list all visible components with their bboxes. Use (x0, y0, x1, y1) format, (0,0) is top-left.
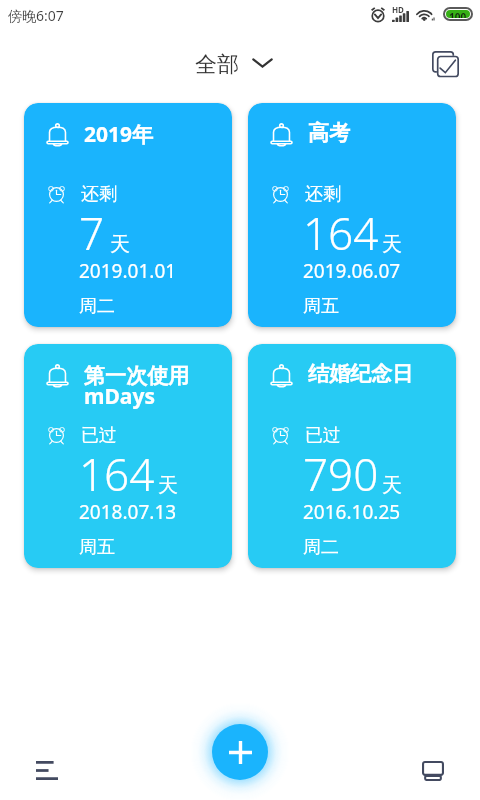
staticText: 天 (110, 232, 130, 257)
staticText: 高考 (308, 120, 350, 146)
staticText: 结婚纪念日 (308, 361, 413, 387)
button[interactable]: Multi select (423, 42, 467, 86)
staticText: 全部 (195, 51, 239, 79)
staticText: 周五 (79, 536, 115, 559)
staticText: mDays (84, 382, 155, 411)
staticText: 100 (449, 10, 467, 18)
staticText: 2019.06.07 (303, 258, 401, 284)
staticText: 2019年 (84, 120, 154, 149)
staticText: 已过 (81, 424, 117, 447)
staticText: 周五 (303, 295, 339, 318)
staticText: 还剩 (305, 183, 341, 206)
button[interactable]: 2019年 (24, 103, 232, 327)
button[interactable]: 全部 (189, 45, 279, 85)
staticText: 还剩 (81, 183, 117, 206)
staticText: 2019.01.01 (79, 258, 177, 284)
staticText: 第一次使用 (84, 363, 189, 389)
button[interactable]: Add (212, 724, 268, 780)
staticText: 天 (382, 232, 402, 257)
staticText: 周二 (303, 536, 339, 559)
button[interactable]: List (24, 747, 70, 793)
staticText: 傍晚6:07 (8, 6, 64, 25)
button[interactable]: 结婚纪念日 (248, 344, 456, 568)
staticText: 164 (79, 444, 155, 504)
staticText: 2018.07.13 (79, 499, 177, 525)
staticText: HD (392, 4, 404, 15)
staticText: 天 (158, 473, 178, 498)
staticText: 7 (79, 203, 105, 263)
staticText: 790 (303, 444, 379, 504)
staticText: 周二 (79, 295, 115, 318)
staticText: 164 (303, 203, 379, 263)
button[interactable]: 高考 (248, 103, 456, 327)
staticText: 已过 (305, 424, 341, 447)
staticText: 天 (382, 473, 402, 498)
button[interactable]: Display (410, 748, 456, 794)
button[interactable]: 第一次使用 (24, 344, 232, 568)
staticText: 2016.10.25 (303, 499, 401, 525)
